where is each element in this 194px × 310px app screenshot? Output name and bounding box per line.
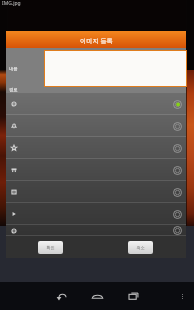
- staticText: 이미지 등록: [80, 36, 113, 44]
- button[interactable]: [6, 225, 186, 236]
- staticText: 확인: [46, 245, 55, 250]
- button[interactable]: Back: [50, 285, 72, 307]
- button[interactable]: [6, 93, 186, 115]
- button[interactable]: [6, 203, 186, 225]
- button[interactable]: 확인: [38, 241, 63, 254]
- button[interactable]: Home: [86, 285, 108, 307]
- staticText: IMG.jpg: [2, 0, 21, 7]
- button[interactable]: [6, 181, 186, 203]
- staticText: 경로: [9, 87, 18, 92]
- button[interactable]: [6, 137, 186, 159]
- button[interactable]: Recents: [122, 285, 144, 307]
- button[interactable]: More options: [175, 289, 189, 303]
- button[interactable]: [6, 159, 186, 181]
- button[interactable]: 취소: [128, 241, 153, 254]
- button[interactable]: [6, 115, 186, 137]
- staticText: 내용: [9, 66, 18, 71]
- staticText: 취소: [136, 245, 145, 250]
